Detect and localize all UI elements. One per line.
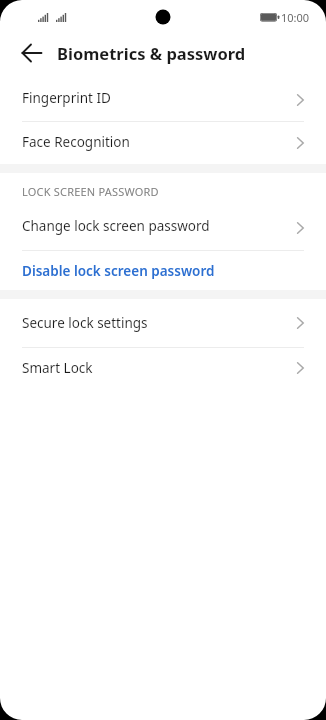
staticText: 10:00 [281,10,310,25]
staticText: Face Recognition [22,133,297,151]
button[interactable]: Face Recognition [0,122,326,164]
button[interactable]: Disable lock screen password [0,251,326,290]
staticText: Secure lock settings [22,314,297,332]
button[interactable] [14,35,50,71]
button[interactable]: Change lock screen password [0,206,326,250]
button[interactable]: Fingerprint ID [0,78,326,121]
staticText: Disable lock screen password [22,262,215,280]
button[interactable]: Secure lock settings [0,299,326,347]
staticText: Smart Lock [22,359,297,377]
staticText: Fingerprint ID [22,89,297,107]
staticText: Change lock screen password [22,217,297,235]
button[interactable]: Smart Lock [0,348,326,388]
staticText: LOCK SCREEN PASSWORD [22,184,159,199]
staticText: Biometrics & password [57,42,246,64]
